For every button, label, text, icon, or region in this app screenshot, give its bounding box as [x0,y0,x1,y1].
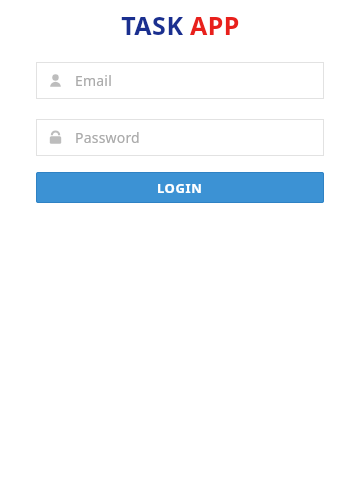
button[interactable]: Password [36,119,324,156]
button[interactable]: LOGIN [36,172,324,203]
other: Email [48,73,63,88]
staticText: Email [75,71,112,90]
other: Password [48,130,63,145]
button[interactable]: Email [36,62,324,99]
staticText: LOGIN [157,179,203,197]
staticText: Password [75,128,140,147]
staticText: TASK APP [121,8,240,42]
